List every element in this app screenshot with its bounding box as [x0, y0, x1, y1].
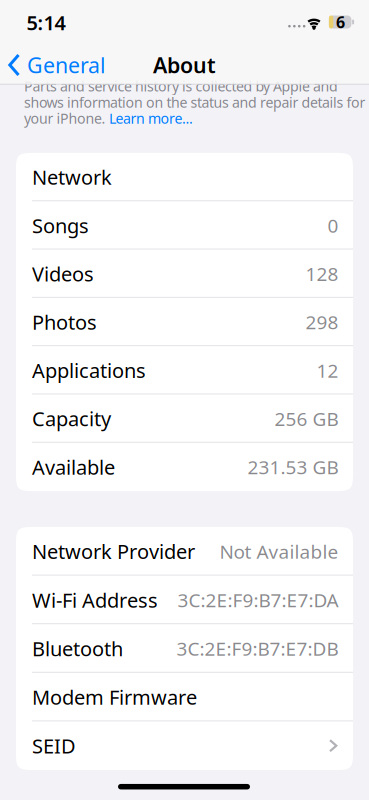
staticText: Network: [32, 164, 112, 190]
staticText: Modem Firmware: [32, 684, 197, 710]
staticText: General: [27, 50, 106, 80]
staticText: 12: [316, 357, 338, 383]
staticText: Learn more...: [109, 109, 193, 128]
staticText: Available: [32, 454, 115, 480]
staticText: 5:14: [26, 9, 65, 36]
button[interactable]: General: [8, 50, 168, 80]
staticText: your iPhone.: [24, 109, 109, 128]
staticText: Applications: [32, 357, 146, 384]
staticText: shows information on the status and repa…: [24, 93, 365, 112]
staticText: 128: [305, 261, 338, 287]
button[interactable]: SEID: [16, 721, 353, 770]
staticText: 298: [305, 309, 338, 335]
staticText: Songs: [32, 212, 89, 239]
staticText: Not Available: [219, 538, 338, 564]
staticText: Bluetooth: [32, 635, 123, 662]
staticText: Wi-Fi Address: [32, 587, 158, 613]
staticText: 3C:2E:F9:B7:E7:DB: [176, 636, 338, 661]
staticText: 256 GB: [274, 406, 338, 431]
staticText: Videos: [32, 260, 94, 287]
staticText: 6: [336, 11, 345, 33]
staticText: Parts and service history is collected b…: [24, 76, 338, 96]
staticText: About: [153, 50, 216, 80]
staticText: 231.53 GB: [247, 454, 338, 480]
staticText: Network Provider: [32, 538, 195, 565]
staticText: Capacity: [32, 405, 111, 432]
staticText: SEID: [32, 732, 76, 759]
staticText: 3C:2E:F9:B7:E7:DA: [177, 587, 338, 613]
staticText: 0: [327, 212, 338, 238]
button[interactable]: Learn more...: [109, 109, 193, 128]
staticText: Photos: [32, 309, 97, 335]
